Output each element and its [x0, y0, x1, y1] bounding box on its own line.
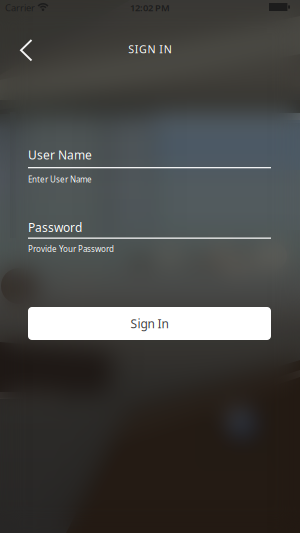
staticText: Password — [28, 219, 82, 235]
staticText: Sign In — [130, 315, 168, 331]
staticText: 12:02 PM — [130, 1, 170, 14]
staticText: User Name — [28, 147, 92, 163]
button[interactable]: Sign In — [28, 307, 271, 340]
staticText: SIGN IN — [128, 42, 172, 56]
staticText: Enter User Name — [28, 174, 92, 185]
staticText: Provide Your Password — [28, 243, 114, 254]
button[interactable]: Back — [0, 0, 45, 66]
staticText: Carrier — [5, 1, 35, 14]
